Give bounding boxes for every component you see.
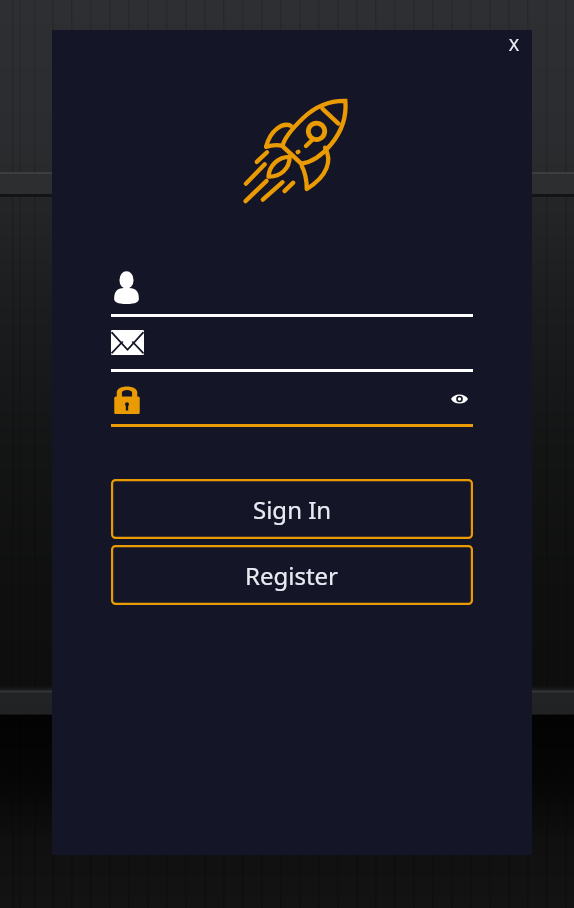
button[interactable]: Register [111, 545, 473, 605]
button[interactable]: Show password [443, 384, 476, 413]
button[interactable]: Email field [111, 322, 473, 370]
button[interactable]: Password field [111, 376, 473, 424]
button[interactable]: Close [497, 27, 531, 61]
button[interactable]: Sign In [111, 479, 473, 539]
button[interactable]: Username field [111, 264, 473, 317]
staticText: Sign In [253, 493, 332, 526]
staticText: X [509, 33, 519, 56]
staticText: Register [245, 559, 339, 592]
